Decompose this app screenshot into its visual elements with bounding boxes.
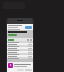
button[interactable] bbox=[7, 45, 33, 47]
button[interactable] bbox=[7, 53, 33, 55]
button[interactable] bbox=[7, 47, 33, 49]
button[interactable]: Status badge bbox=[8, 34, 17, 36]
other: App icon bbox=[8, 63, 13, 68]
button[interactable]: App icon bbox=[8, 63, 32, 68]
button[interactable] bbox=[7, 49, 33, 51]
button[interactable] bbox=[7, 57, 33, 59]
button[interactable] bbox=[7, 55, 33, 57]
button[interactable] bbox=[7, 41, 33, 43]
button[interactable] bbox=[7, 43, 33, 45]
button[interactable] bbox=[7, 51, 33, 53]
button[interactable]: Search bbox=[8, 25, 24, 30]
button[interactable]: Install bbox=[25, 26, 32, 29]
button[interactable]: Confirm bbox=[25, 69, 32, 71]
